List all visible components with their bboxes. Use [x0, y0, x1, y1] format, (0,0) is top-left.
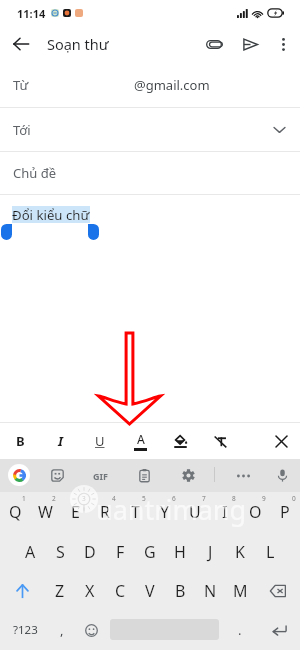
staticText: . [238, 621, 242, 639]
staticText: @gmail.com [134, 76, 210, 94]
staticText: 0 [292, 494, 296, 503]
button[interactable]: H [165, 532, 195, 572]
staticText: 8 [232, 494, 236, 503]
staticText: T [131, 501, 140, 523]
button[interactable]: Highlight colour [162, 423, 198, 459]
button[interactable]: S [45, 532, 75, 572]
button[interactable]: Google [8, 464, 30, 486]
staticText: P [280, 501, 290, 523]
staticText: ?123 [13, 622, 38, 638]
staticText: W [38, 501, 53, 523]
staticText: B [175, 580, 186, 602]
button[interactable]: Back [0, 26, 42, 62]
staticText: D [84, 541, 96, 563]
staticText: 4 [112, 494, 116, 503]
staticText: Từ [13, 76, 29, 94]
button[interactable]: T [120, 492, 150, 532]
staticText: K [235, 541, 245, 563]
button[interactable]: Send [233, 26, 267, 62]
staticText: S [56, 541, 65, 563]
staticText: 7 [202, 494, 206, 503]
staticText: O [249, 501, 262, 523]
button[interactable]: O [240, 492, 270, 532]
staticText: Q [9, 501, 22, 523]
staticText: Tới [13, 121, 31, 139]
button[interactable]: Y [150, 492, 180, 532]
button[interactable]: G [135, 532, 165, 572]
staticText: B [16, 432, 25, 450]
button[interactable]: I [210, 492, 240, 532]
staticText: F [116, 541, 125, 563]
button[interactable]: F [105, 532, 135, 572]
staticText: 5 [142, 494, 146, 503]
button[interactable]: K [225, 532, 255, 572]
staticText: 2 [52, 494, 56, 503]
staticText: A [25, 541, 36, 563]
staticText: Chủ đề [13, 164, 57, 182]
staticText: R [100, 501, 110, 523]
button[interactable]: B [165, 572, 195, 610]
staticText: C [115, 580, 126, 602]
button[interactable]: C [105, 572, 135, 610]
button[interactable]: Underline [82, 423, 118, 459]
staticText: V [145, 580, 155, 602]
button[interactable]: More options [266, 26, 300, 62]
button[interactable]: Italic [42, 423, 78, 459]
button[interactable]: Close [263, 423, 299, 459]
staticText: M [233, 580, 248, 602]
staticText: H [174, 541, 186, 563]
button[interactable]: Settings [172, 459, 204, 492]
button[interactable]: Stickers [41, 459, 73, 492]
button[interactable]: W [30, 492, 60, 532]
button[interactable]: Shift [0, 572, 45, 610]
staticText: I [222, 501, 228, 523]
button[interactable]: Text colour [122, 423, 158, 459]
staticText: 9 [262, 494, 266, 503]
staticText: A [137, 431, 145, 447]
button[interactable]: M [225, 572, 255, 610]
button[interactable]: A [15, 532, 45, 572]
button[interactable]: Chủ đề [0, 152, 300, 194]
button[interactable]: Enter [258, 610, 300, 650]
button[interactable]: Emoji [77, 610, 105, 650]
button[interactable]: X [75, 572, 105, 610]
button[interactable]: N [195, 572, 225, 610]
staticText: GIF [93, 470, 108, 482]
button[interactable]: Clear formatting [202, 423, 238, 459]
button[interactable]: Tới [0, 108, 300, 151]
staticText: uantrimang [96, 491, 247, 528]
button[interactable]: P [270, 492, 300, 532]
staticText: Z [55, 580, 65, 602]
staticText: U [189, 501, 201, 523]
button[interactable]: Backspace [255, 572, 300, 610]
button[interactable]: U [180, 492, 210, 532]
staticText: J [208, 541, 213, 563]
button[interactable]: V [135, 572, 165, 610]
staticText: 1 [22, 494, 26, 503]
staticText: U [95, 432, 105, 450]
staticText: I [58, 432, 63, 450]
button[interactable]: Bold [2, 423, 38, 459]
button[interactable]: , [48, 610, 76, 650]
staticText: Soạn thư [47, 34, 109, 54]
button[interactable]: . [226, 610, 254, 650]
button[interactable]: Attach file [197, 26, 231, 62]
button[interactable]: D [75, 532, 105, 572]
button[interactable]: More [227, 459, 259, 492]
button[interactable]: Voice input [266, 459, 298, 492]
button[interactable]: Q [0, 492, 30, 532]
button[interactable]: L [255, 532, 285, 572]
button[interactable]: Z [45, 572, 75, 610]
staticText: N [204, 580, 217, 602]
button[interactable]: GIF [84, 459, 116, 492]
button[interactable]: R [90, 492, 120, 532]
button[interactable]: E [60, 492, 90, 532]
button[interactable]: Từ [0, 62, 300, 107]
button[interactable]: Clipboard [128, 459, 160, 492]
staticText: , [60, 621, 64, 639]
staticText: L [266, 541, 275, 563]
button[interactable]: ?123 [0, 610, 50, 650]
button[interactable]: J [195, 532, 225, 572]
staticText: 11:14 [17, 6, 46, 21]
